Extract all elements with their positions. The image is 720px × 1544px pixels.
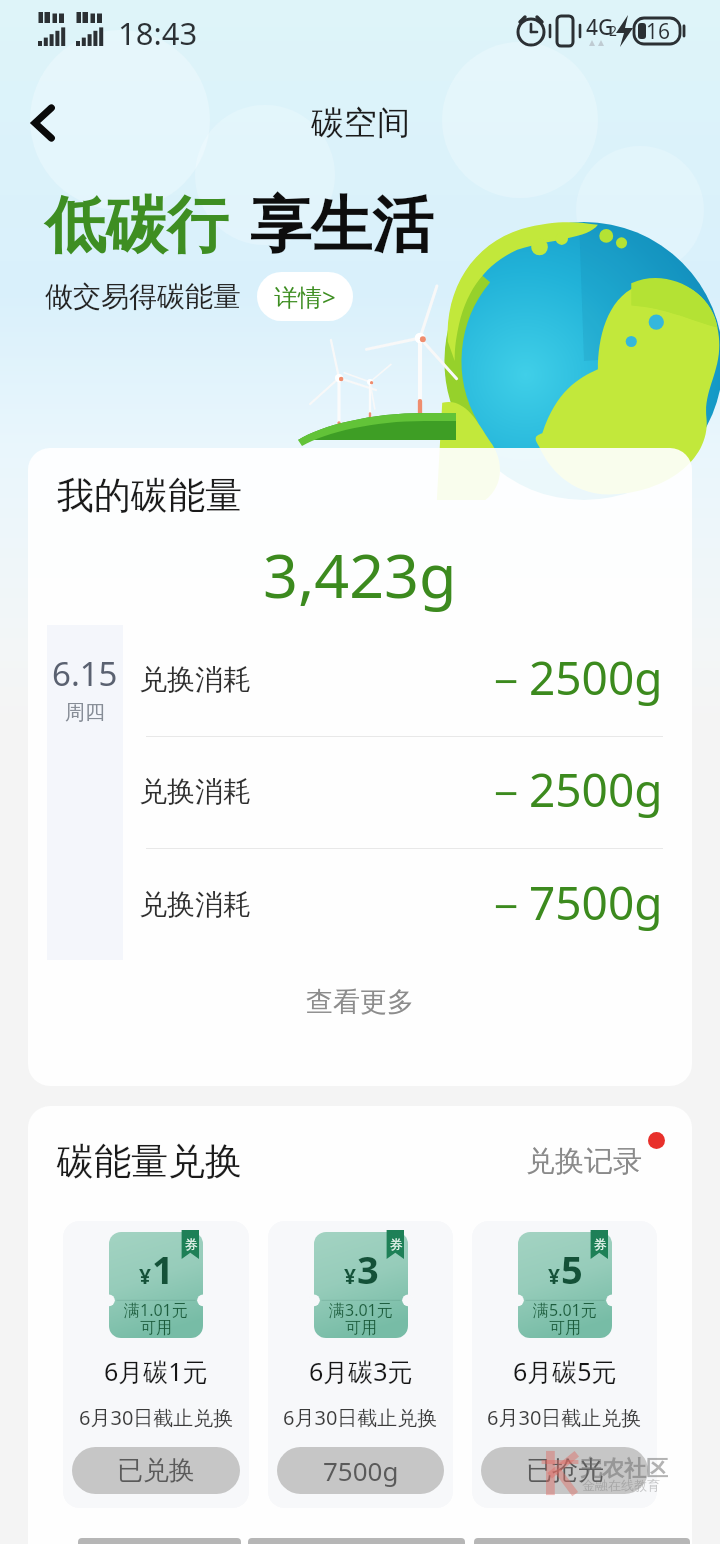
staticText: 金融在线教育 xyxy=(582,1477,660,1493)
staticText: 2 xyxy=(609,21,618,40)
staticText: 享生活 xyxy=(250,187,433,264)
staticText: 16 xyxy=(646,17,671,46)
button[interactable]: 查看更多 xyxy=(28,970,692,1034)
button[interactable]: 兑换记录 xyxy=(526,1143,642,1180)
staticText: 6月碳5元 xyxy=(513,1354,617,1388)
staticText: 6月碳1元 xyxy=(104,1354,208,1388)
button[interactable]: 兑换消耗 xyxy=(139,737,663,848)
button[interactable]: 券 xyxy=(63,1221,249,1508)
staticText: 可用 xyxy=(140,1318,172,1338)
staticText: 18:43 xyxy=(118,12,198,54)
staticText: 满1.01元 xyxy=(124,1299,188,1321)
staticText: 1 xyxy=(152,1243,174,1295)
button[interactable]: Back xyxy=(0,80,86,166)
staticText: 碳能量兑换 xyxy=(57,1138,242,1185)
staticText: 碳空间 xyxy=(311,102,410,144)
button[interactable]: 券 xyxy=(268,1221,453,1508)
staticText: 4G xyxy=(586,13,614,42)
staticText: ¥ xyxy=(548,1262,561,1291)
staticText: 可用 xyxy=(345,1318,377,1338)
staticText: ¥ xyxy=(139,1262,152,1291)
staticText: 券 xyxy=(390,1236,403,1252)
button[interactable]: 已兑换 xyxy=(72,1447,240,1494)
staticText: 7500g xyxy=(323,1453,399,1488)
staticText: 查看更多 xyxy=(306,985,414,1019)
staticText: 做交易得碳能量 xyxy=(45,279,241,314)
staticText: 兑换消耗 xyxy=(139,662,251,697)
staticText: 5 xyxy=(561,1243,583,1295)
staticText: －2500g xyxy=(483,646,663,709)
button[interactable]: 7500g xyxy=(277,1447,444,1494)
button[interactable]: 券 xyxy=(472,1221,657,1508)
staticText: 低碳行 xyxy=(45,187,228,264)
staticText: 周四 xyxy=(65,700,105,725)
staticText: 已兑换 xyxy=(117,1454,195,1487)
staticText: 6月碳3元 xyxy=(309,1354,413,1388)
staticText: 3 xyxy=(357,1243,379,1295)
staticText: 6月30日截止兑换 xyxy=(487,1404,642,1431)
button[interactable]: 已抢光 xyxy=(481,1447,648,1494)
staticText: 详情> xyxy=(274,280,336,313)
staticText: 兑换记录 xyxy=(526,1143,642,1180)
staticText: ¥ xyxy=(344,1262,357,1291)
staticText: 6.15 xyxy=(52,651,118,696)
staticText: 3,423g xyxy=(263,533,457,616)
staticText: 我的碳能量 xyxy=(57,472,242,519)
staticText: －2500g xyxy=(483,758,663,821)
staticText: 兑换消耗 xyxy=(139,887,251,922)
staticText: 兑换消耗 xyxy=(139,774,251,809)
staticText: 完农社区 xyxy=(580,1455,668,1483)
button[interactable]: 兑换消耗 xyxy=(139,625,663,736)
staticText: 满3.01元 xyxy=(329,1299,393,1321)
button[interactable]: 详情> xyxy=(257,272,353,321)
staticText: 满5.01元 xyxy=(533,1299,597,1321)
staticText: 已抢光 xyxy=(526,1454,604,1487)
staticText: 6月30日截止兑换 xyxy=(79,1404,234,1431)
staticText: 可用 xyxy=(549,1318,581,1338)
button[interactable]: 兑换消耗 xyxy=(139,849,663,962)
staticText: －7500g xyxy=(483,871,663,934)
staticText: 6月30日截止兑换 xyxy=(283,1404,438,1431)
staticText: 券 xyxy=(185,1236,198,1252)
staticText: 券 xyxy=(594,1236,607,1252)
